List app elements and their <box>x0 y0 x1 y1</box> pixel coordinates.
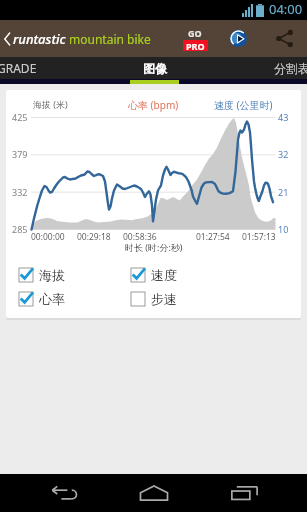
staticText: 285 <box>12 223 28 235</box>
staticText: 43 <box>278 111 289 123</box>
button[interactable]: GRADE <box>0 57 130 79</box>
staticText: 步速 <box>151 291 177 307</box>
button[interactable]: Share <box>268 20 300 57</box>
staticText: 00:00:00 <box>31 231 65 243</box>
staticText: GO <box>188 27 202 39</box>
staticText: 425 <box>12 111 28 123</box>
staticText: 00:29:18 <box>77 231 111 243</box>
button[interactable]: Back <box>39 474 89 512</box>
staticText: 00:58:36 <box>123 231 157 243</box>
staticText: 21 <box>278 186 289 198</box>
staticText: 32 <box>278 148 289 160</box>
staticText: 速度 <box>151 267 177 283</box>
button[interactable]: 海拔 <box>19 265 114 285</box>
button[interactable]: 速度 <box>131 265 226 285</box>
staticText: 速度 (公里时) <box>214 98 273 112</box>
staticText: 10 <box>278 223 289 235</box>
button[interactable]: 步速 <box>131 289 226 309</box>
staticText: 332 <box>12 186 28 198</box>
staticText: 心率 <box>39 291 65 307</box>
staticText: runtastic <box>13 30 66 48</box>
staticText: 海拔 (米) <box>33 98 68 110</box>
staticText: 01:27:54 <box>196 231 230 243</box>
button[interactable]: Home <box>129 474 179 512</box>
staticText: mountain bike <box>69 31 151 47</box>
button[interactable]: Back <box>0 20 13 57</box>
staticText: 01:57:13 <box>242 231 276 243</box>
staticText: 心率 (bpm) <box>128 98 179 112</box>
staticText: 时长 (时:分:秒) <box>125 241 183 253</box>
staticText: 图像 <box>143 61 167 76</box>
staticText: 海拔 <box>39 267 65 283</box>
button[interactable]: Go Pro <box>177 20 213 57</box>
staticText: 379 <box>12 148 28 160</box>
staticText: GRADE <box>0 60 37 76</box>
button[interactable]: 心率 <box>19 289 114 309</box>
staticText: 分割表 <box>274 61 307 76</box>
button[interactable]: 分割表 <box>179 57 307 79</box>
button[interactable]: Recent apps <box>220 474 270 512</box>
staticText: PRO <box>186 40 205 51</box>
button[interactable]: Runtastic <box>226 20 251 57</box>
button[interactable]: 图像 <box>130 57 179 79</box>
staticText: 04:00 <box>269 0 303 18</box>
